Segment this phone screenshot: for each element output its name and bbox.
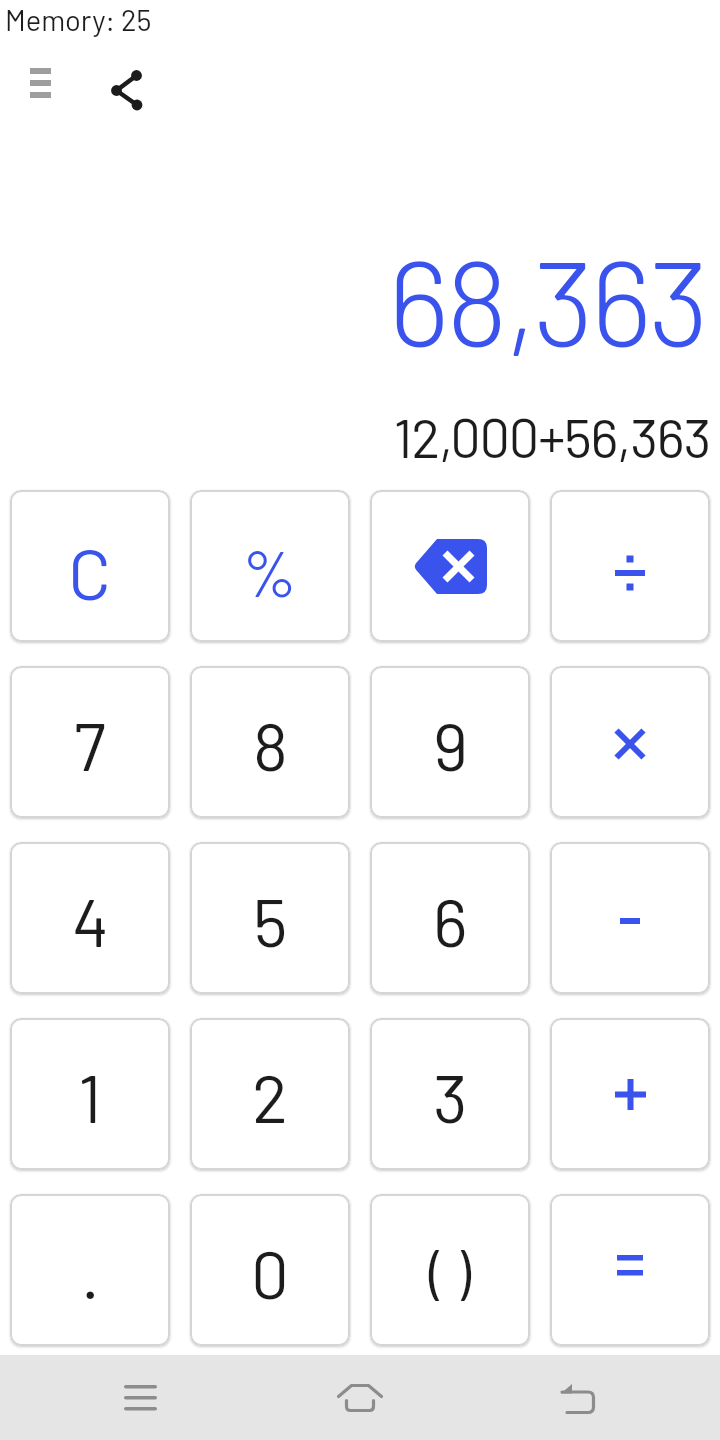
staticText: 1: [78, 1056, 102, 1136]
button[interactable]: 2: [190, 1018, 350, 1170]
button[interactable]: [550, 842, 710, 994]
button[interactable]: [542, 1369, 614, 1427]
button[interactable]: [104, 1369, 176, 1427]
staticText: 8: [253, 704, 288, 784]
staticText: 68,363: [0, 227, 706, 371]
button[interactable]: [550, 490, 710, 642]
button[interactable]: .: [10, 1194, 170, 1346]
button[interactable]: 3: [370, 1018, 530, 1170]
button[interactable]: C: [10, 490, 170, 642]
button[interactable]: [18, 58, 62, 108]
button[interactable]: 6: [370, 842, 530, 994]
staticText: 3: [433, 1056, 468, 1136]
button[interactable]: 1: [10, 1018, 170, 1170]
button[interactable]: [370, 490, 530, 642]
button[interactable]: %: [190, 490, 350, 642]
button[interactable]: [550, 1018, 710, 1170]
staticText: 0: [251, 1232, 289, 1312]
staticText: .: [81, 1232, 100, 1312]
staticText: 5: [253, 880, 288, 960]
staticText: 4: [72, 880, 109, 960]
button[interactable]: 7: [10, 666, 170, 818]
staticText: 7: [74, 704, 106, 784]
staticText: Memory: 25: [5, 2, 152, 37]
staticText: 9: [433, 704, 468, 784]
button[interactable]: [550, 1194, 710, 1346]
staticText: 6: [433, 880, 468, 960]
staticText: C: [68, 529, 112, 614]
button[interactable]: ( ): [370, 1194, 530, 1346]
staticText: 2: [252, 1056, 288, 1136]
staticText: ( ): [429, 1237, 471, 1307]
button[interactable]: 5: [190, 842, 350, 994]
button[interactable]: 4: [10, 842, 170, 994]
staticText: %: [242, 532, 298, 610]
button[interactable]: [324, 1369, 396, 1427]
button[interactable]: 0: [190, 1194, 350, 1346]
staticText: 12,000+56,363: [0, 404, 710, 469]
button[interactable]: 9: [370, 666, 530, 818]
button[interactable]: 8: [190, 666, 350, 818]
button[interactable]: [100, 64, 152, 116]
button[interactable]: [550, 666, 710, 818]
